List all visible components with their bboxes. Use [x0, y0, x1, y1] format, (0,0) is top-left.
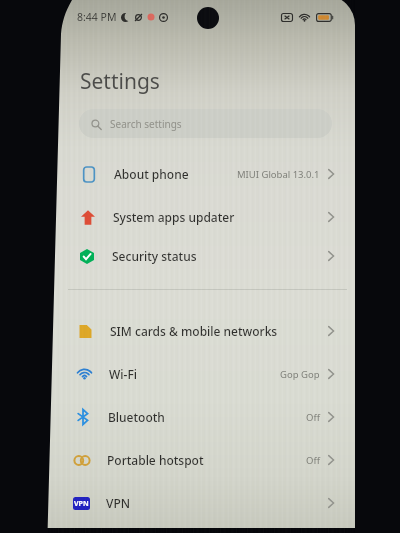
staticText: Off: [306, 411, 320, 424]
staticText: Security status: [112, 248, 197, 264]
staticText: Portable hotspot: [107, 452, 204, 468]
staticText: Wi-Fi: [109, 366, 137, 382]
staticText: Search settings: [110, 117, 182, 131]
button[interactable]: VPN: [50, 483, 347, 523]
button[interactable]: Bluetooth: [52, 397, 349, 437]
staticText: Settings: [80, 67, 160, 96]
button[interactable]: Security status: [56, 236, 353, 276]
staticText: SIM cards & mobile networks: [110, 323, 278, 339]
button[interactable]: Search settings: [79, 109, 332, 138]
staticText: Off: [306, 454, 320, 467]
staticText: Gop Gop: [280, 368, 320, 381]
button[interactable]: System apps updater: [57, 197, 354, 237]
staticText: About phone: [114, 166, 189, 182]
button[interactable]: Wi-Fi: [53, 354, 350, 394]
other: No SIM: [281, 13, 293, 22]
staticText: VPN: [106, 495, 131, 511]
staticText: VPN: [74, 499, 89, 509]
staticText: 8:44 PM: [77, 10, 117, 24]
button[interactable]: SIM cards & mobile networks: [54, 311, 351, 351]
staticText: Bluetooth: [108, 409, 165, 425]
button[interactable]: About phone: [58, 154, 355, 194]
staticText: MIUI Global 13.0.1: [237, 168, 320, 181]
staticText: System apps updater: [113, 209, 235, 225]
button[interactable]: Portable hotspot: [51, 440, 348, 480]
